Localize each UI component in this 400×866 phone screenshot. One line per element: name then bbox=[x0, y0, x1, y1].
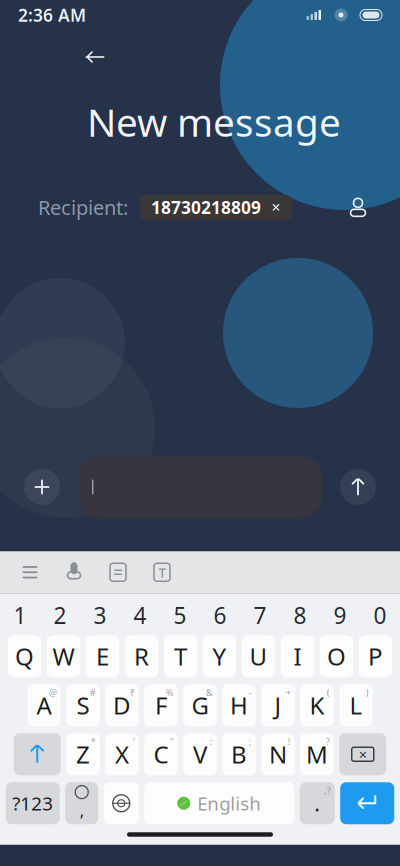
staticText: ? bbox=[326, 735, 330, 748]
staticText: A bbox=[36, 689, 51, 721]
button[interactable]: 3 bbox=[80, 599, 120, 631]
button[interactable]: Menu bbox=[8, 552, 52, 592]
staticText: 5 bbox=[173, 600, 186, 630]
button[interactable]: @ bbox=[27, 684, 61, 726]
button[interactable]: ?123 bbox=[6, 782, 60, 824]
staticText: Recipient: bbox=[38, 194, 128, 221]
staticText: L bbox=[349, 689, 362, 721]
staticText: M bbox=[306, 738, 328, 770]
button[interactable]: - bbox=[222, 684, 256, 726]
button[interactable]: ( bbox=[300, 684, 334, 726]
staticText: C bbox=[153, 738, 168, 770]
button[interactable]: Return bbox=[340, 782, 394, 824]
staticText: S bbox=[76, 689, 89, 721]
button[interactable]: ? bbox=[300, 733, 334, 775]
staticText: V bbox=[193, 738, 207, 770]
button[interactable]: ' bbox=[105, 733, 139, 775]
staticText: Z bbox=[76, 738, 90, 770]
button[interactable]: Shift bbox=[14, 733, 61, 775]
staticText: % bbox=[166, 686, 174, 699]
button[interactable]: I bbox=[281, 635, 314, 677]
button[interactable]: : bbox=[183, 733, 217, 775]
staticText: 8 bbox=[293, 600, 306, 630]
staticText: T bbox=[158, 563, 165, 581]
staticText: N bbox=[269, 738, 287, 770]
staticText: , bbox=[80, 800, 84, 821]
button[interactable]: Send bbox=[336, 465, 380, 509]
button[interactable]: Voice input bbox=[52, 552, 96, 592]
staticText: ; bbox=[249, 735, 252, 748]
staticText: I bbox=[293, 640, 301, 672]
button[interactable]: E bbox=[86, 635, 119, 677]
button[interactable]: O bbox=[320, 635, 353, 677]
button[interactable]: 5 bbox=[160, 599, 200, 631]
button[interactable]: P bbox=[359, 635, 392, 677]
button[interactable]: 7 bbox=[240, 599, 280, 631]
button[interactable]: * bbox=[66, 733, 100, 775]
button[interactable]: + bbox=[261, 684, 295, 726]
staticText: × bbox=[359, 744, 367, 764]
staticText: W bbox=[52, 640, 74, 672]
button[interactable]: Back bbox=[75, 40, 115, 74]
staticText: 18730218809 bbox=[151, 196, 261, 219]
button[interactable]: 8 bbox=[280, 599, 320, 631]
staticText: H bbox=[230, 689, 248, 721]
button[interactable]: ! bbox=[261, 733, 295, 775]
staticText: @ bbox=[49, 686, 57, 699]
button[interactable]: 9 bbox=[320, 599, 360, 631]
button[interactable]: 0 bbox=[360, 599, 400, 631]
button[interactable]: 2 bbox=[40, 599, 80, 631]
staticText: New message bbox=[87, 96, 341, 147]
staticText: E bbox=[96, 640, 109, 672]
button[interactable]: Text tools bbox=[140, 552, 184, 592]
button[interactable]: W bbox=[47, 635, 80, 677]
button[interactable]: ,? bbox=[300, 782, 335, 824]
staticText: ?123 bbox=[12, 791, 53, 816]
button[interactable]: U bbox=[242, 635, 275, 677]
button[interactable]: Switch language bbox=[104, 782, 139, 824]
staticText: 2 bbox=[53, 600, 66, 630]
button[interactable]: Add attachment bbox=[20, 465, 64, 509]
button[interactable]: Emoji bbox=[65, 782, 98, 824]
button[interactable]: Choose contact bbox=[338, 189, 378, 225]
button[interactable]: Clipboard bbox=[96, 552, 140, 592]
staticText: & bbox=[206, 686, 213, 699]
staticText: X bbox=[115, 738, 129, 770]
button[interactable]: ) bbox=[339, 684, 373, 726]
staticText: * bbox=[91, 735, 96, 748]
button[interactable]: 1 bbox=[0, 599, 40, 631]
button[interactable]: English bbox=[144, 782, 294, 824]
staticText: ₹ bbox=[130, 686, 135, 699]
staticText: 7 bbox=[253, 600, 266, 630]
staticText: 9 bbox=[333, 600, 346, 630]
button[interactable]: ₹ bbox=[105, 684, 139, 726]
staticText: B bbox=[231, 738, 247, 770]
button[interactable]: Y bbox=[203, 635, 236, 677]
staticText: English bbox=[197, 791, 261, 816]
button[interactable]: 6 bbox=[200, 599, 240, 631]
staticText: 0 bbox=[373, 600, 386, 630]
button[interactable]: % bbox=[144, 684, 178, 726]
staticText: . bbox=[314, 789, 320, 817]
staticText: ! bbox=[288, 735, 291, 748]
button[interactable]: Backspace bbox=[339, 733, 386, 775]
button[interactable]: Q bbox=[8, 635, 41, 677]
button[interactable]: " bbox=[144, 733, 178, 775]
staticText: 3 bbox=[93, 600, 106, 630]
staticText: 2:36 AM bbox=[18, 3, 86, 26]
staticText: # bbox=[90, 686, 96, 699]
staticText: T bbox=[174, 640, 187, 672]
button[interactable]: ; bbox=[222, 733, 256, 775]
button[interactable]: 18730218809 bbox=[140, 195, 292, 220]
staticText: 6 bbox=[213, 600, 226, 630]
button[interactable]: T bbox=[164, 635, 197, 677]
staticText: " bbox=[170, 735, 174, 748]
staticText: R bbox=[134, 640, 149, 672]
staticText: + bbox=[286, 686, 291, 699]
button[interactable]: R bbox=[125, 635, 158, 677]
button[interactable]: 4 bbox=[120, 599, 160, 631]
button[interactable]: & bbox=[183, 684, 217, 726]
staticText: P bbox=[368, 640, 383, 672]
staticText: - bbox=[249, 686, 252, 699]
button[interactable]: # bbox=[66, 684, 100, 726]
